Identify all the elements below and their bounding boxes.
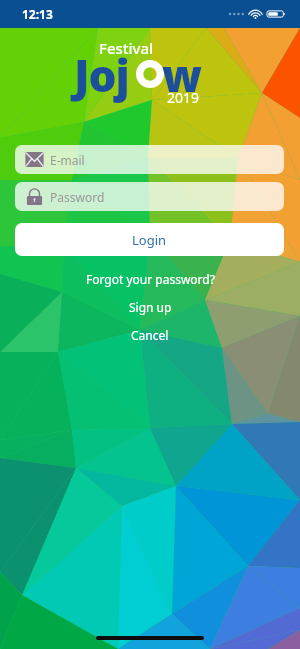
staticText: Login [132,231,167,249]
other: Wi-Fi [249,9,262,19]
button[interactable]: Login [15,223,284,256]
button[interactable]: Password [15,182,284,211]
staticText: 12:13 [22,6,53,22]
other: Battery [267,9,286,19]
button[interactable]: Sign up [0,298,300,315]
staticText: E-mail [50,152,85,168]
staticText: Joj [74,45,129,105]
staticText: Cancel [131,327,169,343]
staticText: 2019 [167,88,200,107]
button[interactable]: Cancel [0,326,300,343]
staticText: w [162,45,202,105]
staticText: Forgot your password? [86,271,215,287]
button[interactable]: Forgot your password? [0,270,300,287]
button[interactable]: E-mail [15,145,284,174]
staticText: Password [50,189,105,205]
staticText: Sign up [129,299,172,315]
staticText: Festival [99,38,154,58]
other: Signal [228,10,245,18]
